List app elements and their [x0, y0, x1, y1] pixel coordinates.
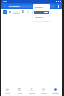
staticText: Shared — [29, 92, 35, 94]
button[interactable]: Underline — [31, 10, 35, 14]
button[interactable] — [34, 6, 49, 9]
button[interactable]: Starred — [38, 85, 49, 96]
button[interactable]: Insert — [3, 10, 7, 14]
button[interactable]: More options — [56, 4, 60, 8]
button[interactable]: Table — [8, 10, 12, 14]
staticText: Docs — [18, 92, 22, 94]
staticText: Normal — [13, 12, 20, 14]
button[interactable]: Home — [2, 85, 13, 96]
button[interactable]: Back — [3, 4, 7, 8]
staticText: Home — [5, 92, 10, 94]
staticText: Document — [9, 5, 20, 8]
button[interactable]: Bold — [21, 10, 25, 14]
button[interactable]: Shared — [26, 85, 37, 96]
button[interactable]: Docs — [14, 85, 25, 96]
staticText: Starred — [41, 92, 47, 94]
button[interactable] — [34, 11, 49, 14]
button[interactable] — [34, 16, 49, 19]
button[interactable]: Normal — [13, 11, 20, 14]
staticText: Account — [52, 92, 59, 94]
staticText: 9:41 — [3, 0, 7, 3]
staticText: B — [22, 10, 24, 14]
button[interactable]: Account — [50, 85, 61, 96]
button[interactable]: Italic — [26, 10, 30, 14]
button[interactable]: Document — [8, 5, 55, 8]
